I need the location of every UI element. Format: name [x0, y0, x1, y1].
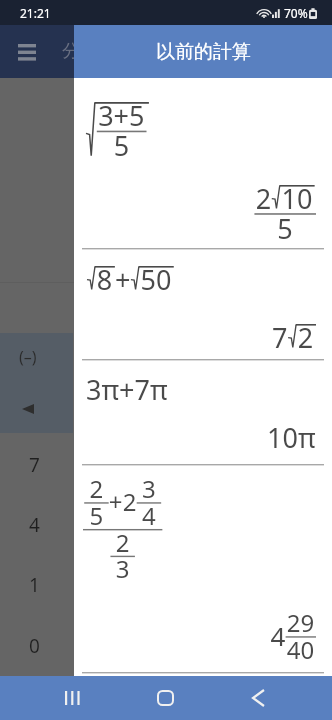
- button[interactable]: Menu: [18, 44, 36, 60]
- staticText: 分數: [62, 40, 98, 63]
- staticText: 以前的計算: [156, 40, 251, 64]
- button[interactable]: Home: [142, 676, 188, 720]
- staticText: 21:21: [20, 5, 51, 21]
- staticText: 0: [29, 633, 40, 659]
- staticText: 4: [29, 512, 40, 538]
- staticText: 7: [29, 452, 40, 478]
- staticText: 1: [29, 572, 40, 598]
- staticText: 70%: [284, 5, 308, 21]
- button[interactable]: Back: [235, 676, 281, 720]
- staticText: (–): [19, 346, 37, 368]
- button[interactable]: Recent apps: [49, 676, 95, 720]
